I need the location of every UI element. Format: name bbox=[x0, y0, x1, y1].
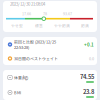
staticText: 体重(kg) bbox=[14, 75, 28, 80]
button[interactable]: 30日間のベストウェイト bbox=[3, 52, 97, 65]
staticText: BMI bbox=[14, 90, 21, 95]
staticText: 肥満 bbox=[81, 23, 89, 28]
staticText: 93.67 bbox=[63, 11, 72, 16]
button[interactable]: 体重(kg) bbox=[3, 70, 97, 85]
staticText: 0.0 bbox=[89, 56, 94, 61]
staticText: 30日間のベストウェイト bbox=[14, 56, 58, 61]
staticText: 78 bbox=[43, 11, 47, 16]
staticText: 2023/12/30 21:08:04 bbox=[10, 1, 45, 7]
button[interactable]: 前回と比較 (2023/12/25 bbox=[3, 37, 97, 52]
staticText: 22:53:28) bbox=[14, 44, 29, 50]
staticText: 17.66 bbox=[22, 11, 31, 16]
staticText: 前回と比較 (2023/12/25 bbox=[14, 39, 56, 44]
staticText: 23.8 bbox=[83, 87, 94, 96]
button[interactable]: BMI bbox=[3, 85, 97, 100]
staticText: やせ型 bbox=[11, 23, 23, 28]
staticText: 74.55 bbox=[80, 72, 94, 81]
staticText: +0.1 bbox=[84, 41, 94, 48]
staticText: 標準 bbox=[35, 23, 43, 28]
staticText: やや肥満 bbox=[54, 23, 70, 28]
